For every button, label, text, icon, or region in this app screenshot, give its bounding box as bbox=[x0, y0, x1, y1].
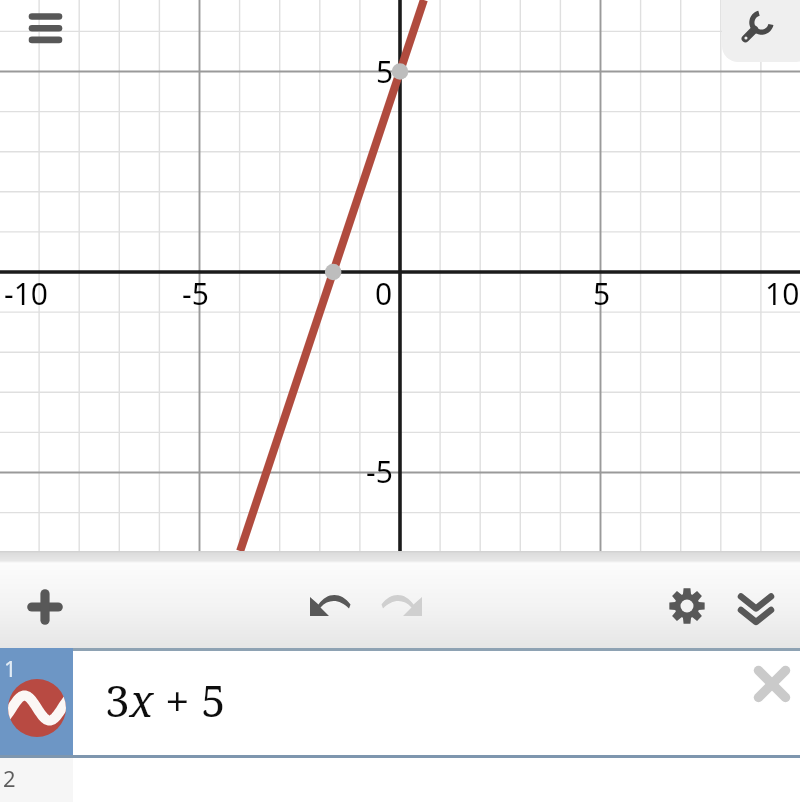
staticText: -5 bbox=[366, 451, 393, 492]
button[interactable]: Menu bbox=[15, 0, 77, 62]
button[interactable]: Undo bbox=[299, 574, 361, 636]
button[interactable]: Graph settings bbox=[722, 0, 800, 62]
staticText: -10 bbox=[4, 273, 48, 314]
button[interactable]: 2 bbox=[0, 758, 73, 802]
staticText: 5 bbox=[376, 51, 394, 92]
staticText: 2 bbox=[3, 763, 16, 793]
button[interactable]: 3x + 5 bbox=[73, 648, 800, 755]
staticText: 1 bbox=[4, 653, 17, 683]
button[interactable]: Delete expression bbox=[745, 657, 799, 711]
button[interactable]: 1 bbox=[0, 648, 73, 755]
staticText: 10 bbox=[765, 273, 800, 314]
button[interactable]: Collapse keyboard bbox=[725, 577, 787, 639]
staticText: 3x + 5 bbox=[105, 670, 226, 730]
staticText: -5 bbox=[182, 273, 209, 314]
button[interactable]: Settings bbox=[656, 575, 718, 637]
staticText: 5 bbox=[593, 273, 611, 314]
staticText: 0 bbox=[375, 273, 393, 314]
button[interactable]: Redo bbox=[371, 574, 433, 636]
button[interactable]: Add expression bbox=[14, 576, 76, 638]
